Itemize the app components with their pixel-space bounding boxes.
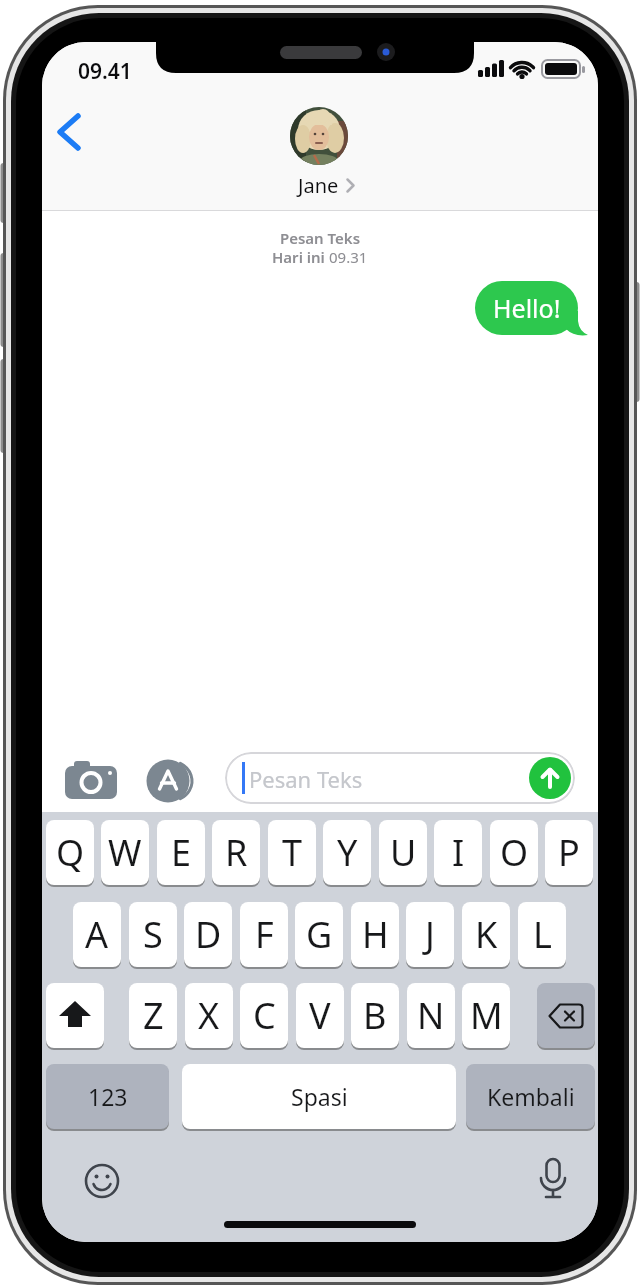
staticText: M	[470, 991, 503, 1040]
staticText: Kembali	[487, 1081, 575, 1112]
staticText: Jane	[298, 172, 339, 199]
staticText: G	[306, 910, 333, 959]
button[interactable]: Hello!	[475, 281, 578, 335]
button[interactable]: Y	[323, 820, 371, 885]
button[interactable]: G	[295, 902, 343, 967]
staticText: Spasi	[291, 1081, 348, 1112]
button[interactable]	[537, 1158, 569, 1204]
staticText: Pesan Teks	[249, 764, 363, 794]
button[interactable]: V	[296, 983, 344, 1048]
staticText: O	[500, 828, 529, 877]
button[interactable]: S	[129, 902, 177, 967]
button[interactable]: U	[379, 820, 427, 885]
button[interactable]: M	[462, 983, 510, 1048]
button[interactable]	[529, 757, 571, 799]
button[interactable]: X	[185, 983, 233, 1048]
staticText: 123	[88, 1081, 128, 1112]
staticText: I	[452, 828, 465, 877]
staticText: H	[362, 910, 389, 959]
button[interactable]: W	[101, 820, 149, 885]
staticText: V	[309, 991, 331, 1040]
staticText: B	[363, 991, 387, 1040]
button[interactable]: F	[240, 902, 288, 967]
staticText: Q	[56, 828, 85, 877]
button[interactable]: Spasi	[182, 1064, 456, 1129]
staticText: Pesan Teks	[42, 228, 598, 248]
button[interactable]: Kembali	[466, 1064, 595, 1129]
button[interactable]: B	[351, 983, 399, 1048]
button[interactable]: T	[268, 820, 316, 885]
staticText: F	[255, 910, 274, 959]
staticText: J	[425, 910, 435, 959]
staticText: R	[225, 828, 248, 877]
button[interactable]: O	[490, 820, 538, 885]
staticText: P	[558, 828, 580, 877]
staticText: A	[85, 910, 109, 959]
button[interactable]	[50, 106, 90, 158]
staticText: X	[198, 991, 220, 1040]
staticText: U	[390, 828, 417, 877]
staticText: K	[475, 910, 498, 959]
staticText: 09.41	[78, 57, 132, 86]
staticText: D	[195, 910, 222, 959]
button[interactable]: Z	[129, 983, 177, 1048]
button[interactable]	[146, 757, 198, 805]
button[interactable]: Q	[46, 820, 94, 885]
staticText: S	[143, 910, 163, 959]
staticText: L	[533, 910, 552, 959]
button[interactable]	[537, 983, 595, 1048]
button[interactable]: E	[157, 820, 205, 885]
staticText: C	[253, 991, 276, 1040]
button[interactable]: C	[240, 983, 288, 1048]
button[interactable]: L	[518, 902, 566, 967]
staticText: Hello!	[493, 291, 561, 325]
button[interactable]: A	[73, 902, 121, 967]
button[interactable]: K	[462, 902, 510, 967]
button[interactable]: H	[351, 902, 399, 967]
button[interactable]	[46, 983, 104, 1048]
staticText: Z	[143, 991, 164, 1040]
button[interactable]: Pesan Teks	[225, 752, 575, 804]
staticText: Y	[337, 828, 358, 877]
button[interactable]: 123	[46, 1064, 169, 1129]
button[interactable]: I	[434, 820, 482, 885]
button[interactable]: J	[406, 902, 454, 967]
staticText: W	[108, 828, 142, 877]
button[interactable]: P	[545, 820, 593, 885]
staticText: Hari ini	[272, 247, 329, 267]
button[interactable]	[64, 759, 120, 801]
staticText: N	[417, 991, 445, 1040]
button[interactable]	[83, 1162, 121, 1200]
button[interactable]: D	[184, 902, 232, 967]
staticText: T	[282, 828, 303, 877]
button[interactable]	[290, 107, 348, 165]
staticText: 09.31	[329, 247, 368, 267]
staticText: E	[171, 828, 192, 877]
button[interactable]: N	[407, 983, 455, 1048]
button[interactable]: R	[212, 820, 260, 885]
